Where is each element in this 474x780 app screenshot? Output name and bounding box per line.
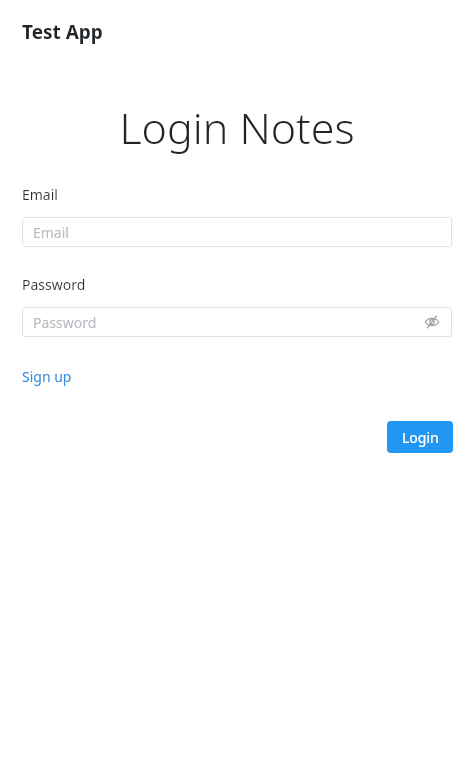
button[interactable]: Sign up [22,367,72,386]
staticText: Password [22,275,86,294]
staticText: Password [33,313,420,332]
staticText: Sign up [22,367,72,386]
button[interactable]: Password [22,307,452,337]
button[interactable]: Login [387,421,453,453]
staticText: Login [402,428,439,447]
button[interactable]: Show password [420,310,444,334]
staticText: Email [22,185,58,204]
staticText: Test App [22,19,103,45]
staticText: Email [33,223,69,242]
button[interactable]: Test App [0,0,474,64]
button[interactable]: Email [22,217,452,247]
staticText: Login Notes [0,98,474,157]
